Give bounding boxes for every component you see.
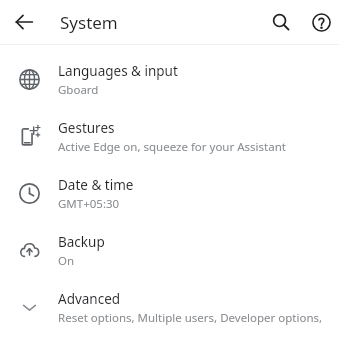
button[interactable]: Search [264,5,298,39]
staticText: Gboard [58,82,99,98]
button[interactable]: Advanced [0,279,339,336]
staticText: Reset options, Multiple users, Developer… [58,310,329,326]
staticText: Backup [58,233,105,251]
button[interactable]: Gestures [0,108,339,165]
staticText: System [60,11,118,34]
button[interactable]: Back [6,4,42,40]
staticText: Gestures [58,119,115,137]
button[interactable]: Languages & input [0,51,339,108]
staticText: Languages & input [58,62,178,80]
staticText: Active Edge on, squeeze for your Assista… [58,139,286,155]
staticText: On [58,253,75,269]
staticText: GMT+05:30 [58,196,120,212]
button[interactable]: Help [304,5,338,39]
button[interactable]: Date & time [0,165,339,222]
staticText: Date & time [58,176,134,194]
button[interactable]: Backup [0,222,339,279]
staticText: Advanced [58,290,121,308]
